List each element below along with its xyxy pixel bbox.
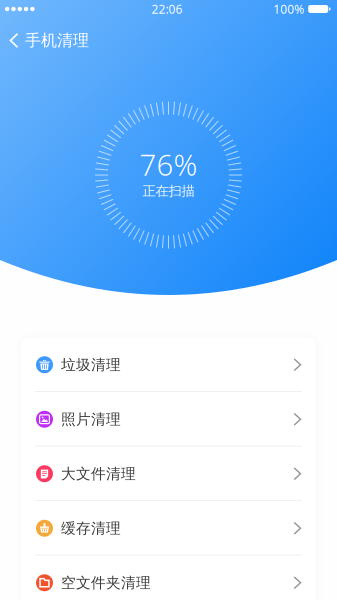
staticText: 22:06 — [151, 1, 182, 17]
staticText: 76% — [139, 145, 197, 184]
button[interactable]: 缓存清理 — [21, 501, 316, 556]
staticText: 大文件清理 — [61, 465, 136, 483]
staticText: 正在扫描 — [142, 183, 194, 199]
button[interactable]: 照片清理 — [21, 392, 316, 447]
button[interactable]: 大文件清理 — [21, 447, 316, 501]
staticText: 垃圾清理 — [61, 356, 121, 374]
staticText: 照片清理 — [61, 410, 121, 428]
button[interactable]: 垃圾清理 — [21, 338, 316, 392]
staticText: 100% — [273, 1, 304, 17]
button[interactable]: 手机清理 — [0, 23, 101, 57]
staticText: 空文件夹清理 — [61, 574, 151, 592]
staticText: 手机清理 — [25, 31, 89, 50]
button[interactable]: 空文件夹清理 — [21, 556, 316, 600]
staticText: 缓存清理 — [61, 519, 121, 537]
